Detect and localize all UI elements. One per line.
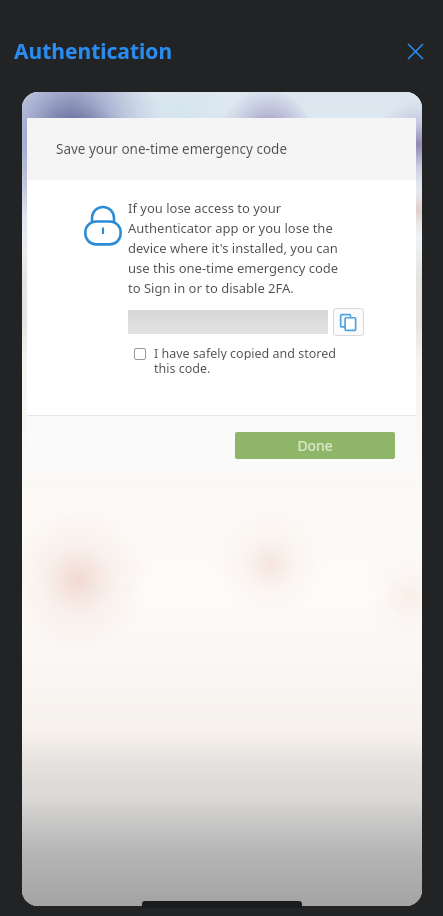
- staticText: to Sign in or to disable 2FA.: [128, 279, 294, 297]
- staticText: device where it's installed, you can: [128, 239, 338, 257]
- button[interactable]: Close: [399, 35, 431, 67]
- staticText: Save your one-time emergency code: [56, 140, 288, 158]
- staticText: Done: [297, 436, 333, 455]
- staticText: If you lose access to your: [128, 199, 282, 217]
- staticText: I have safely copied and stored: [154, 345, 336, 360]
- button[interactable]: Copy code: [333, 308, 364, 336]
- staticText: Authenticator app or you lose the: [128, 219, 333, 237]
- staticText: this code.: [154, 360, 211, 375]
- button[interactable]: Done: [235, 432, 395, 459]
- button[interactable]: Emergency code: [128, 310, 328, 334]
- staticText: use this one-time emergency code: [128, 259, 339, 277]
- staticText: Authentication: [14, 37, 173, 66]
- button[interactable]: I have safely copied and stored: [128, 345, 364, 375]
